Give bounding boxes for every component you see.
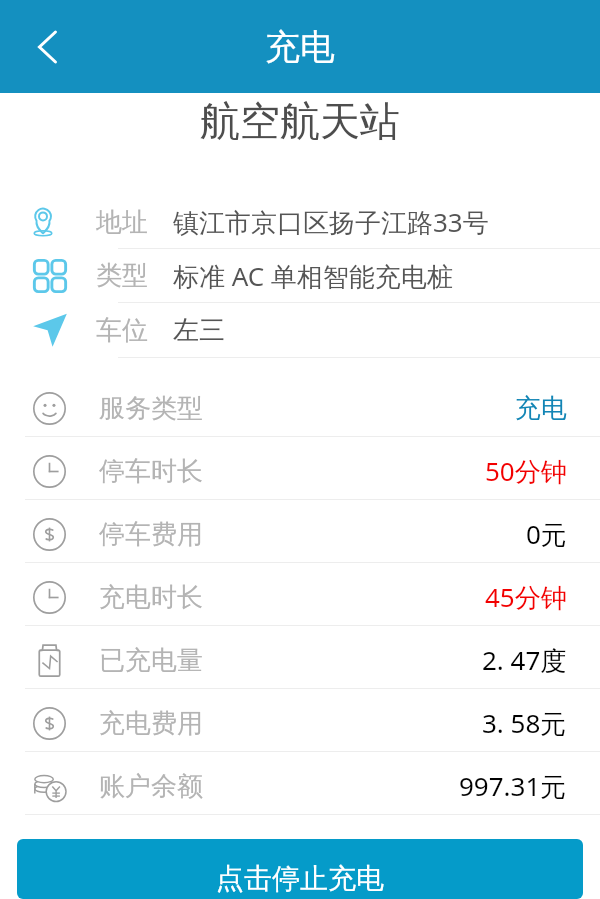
button[interactable]: 账户余额 — [0, 752, 600, 815]
button[interactable]: 已充电量 — [0, 626, 600, 689]
staticText: 航空航天站 — [200, 96, 400, 146]
button[interactable]: 车位 — [0, 303, 600, 358]
staticText: 地址 — [96, 206, 148, 239]
staticText: 镇江市京口区扬子江路33号 — [173, 204, 489, 240]
staticText: 45分钟 — [485, 579, 567, 615]
button[interactable]: 点击停止充电 — [17, 839, 583, 899]
button[interactable]: Back — [0, 0, 94, 93]
staticText: 充电 — [265, 25, 335, 69]
staticText: 充电费用 — [99, 707, 203, 740]
button[interactable]: 地址 — [0, 196, 600, 249]
staticText: 2. 47度 — [482, 642, 567, 678]
staticText: 已充电量 — [99, 644, 203, 677]
staticText: 左三 — [173, 314, 225, 347]
staticText: 997.31元 — [459, 768, 567, 804]
staticText: 充电 — [515, 392, 567, 425]
button[interactable]: 充电费用 — [0, 689, 600, 752]
staticText: 标准 AC 单相智能充电桩 — [173, 258, 454, 294]
button[interactable]: 服务类型 — [0, 374, 600, 437]
staticText: 0元 — [526, 516, 567, 552]
button[interactable]: 停车时长 — [0, 437, 600, 500]
staticText: 停车费用 — [99, 518, 203, 551]
staticText: 车位 — [96, 314, 148, 347]
staticText: 停车时长 — [99, 455, 203, 488]
staticText: 50分钟 — [485, 453, 567, 489]
staticText: 充电时长 — [99, 581, 203, 614]
staticText: 点击停止充电 — [216, 861, 384, 896]
staticText: 账户余额 — [99, 770, 203, 803]
staticText: 服务类型 — [99, 392, 203, 425]
button[interactable]: 充电时长 — [0, 563, 600, 626]
staticText: 3. 58元 — [482, 705, 567, 741]
button[interactable]: 停车费用 — [0, 500, 600, 563]
button[interactable]: 类型 — [0, 249, 600, 303]
staticText: 类型 — [96, 259, 148, 292]
